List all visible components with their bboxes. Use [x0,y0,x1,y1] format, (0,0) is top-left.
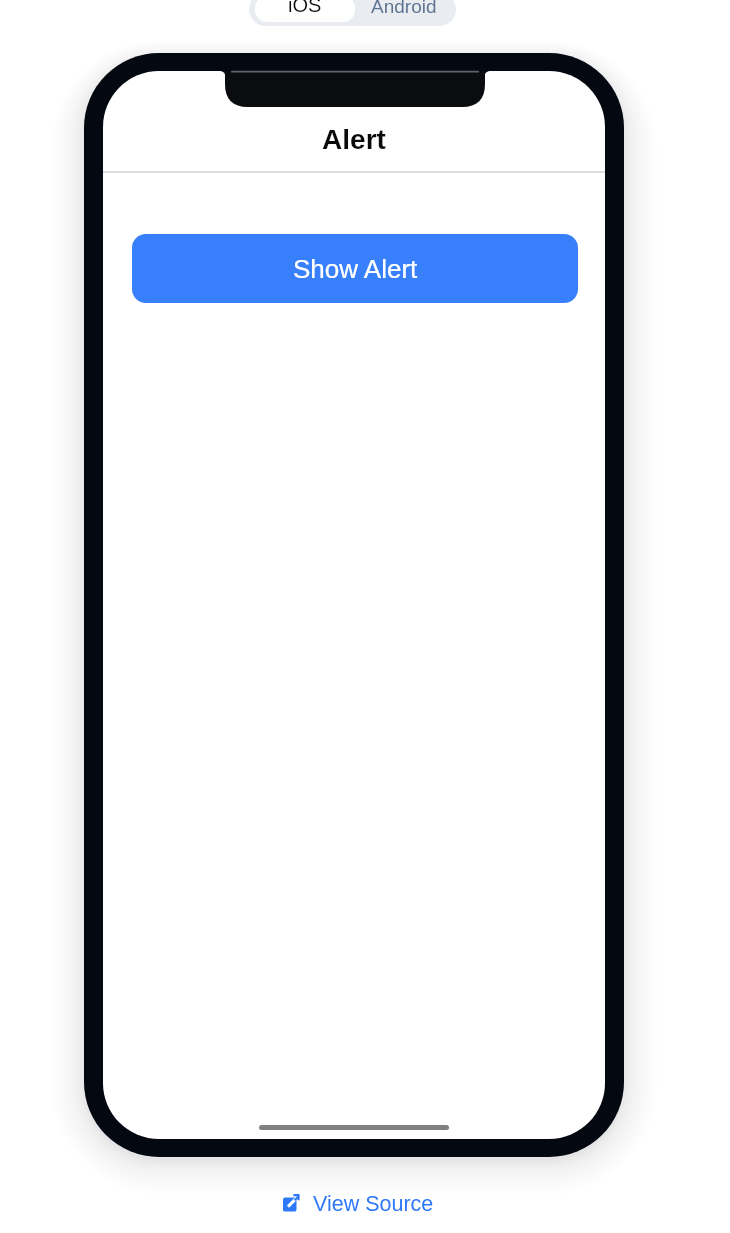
button[interactable]: View Source [281,1189,434,1219]
button[interactable]: Show Alert [132,234,578,303]
staticText: iOS [288,0,322,16]
staticText: Android [371,0,437,17]
staticText: View Source [313,1192,434,1216]
button[interactable]: iOS [255,0,355,22]
button[interactable]: Android [356,0,452,21]
staticText: Alert [103,124,605,155]
other: View Source [281,1193,303,1215]
staticText: Show Alert [293,254,418,283]
